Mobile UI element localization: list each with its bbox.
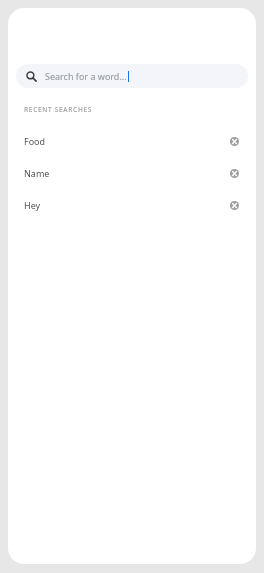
- button[interactable]: Search for a word...: [16, 64, 248, 88]
- button[interactable]: Remove Name from recent searches: [226, 165, 242, 181]
- button[interactable]: Remove Hey from recent searches: [226, 197, 242, 213]
- staticText: Hey: [24, 199, 41, 211]
- button[interactable]: Remove Food from recent searches: [226, 133, 242, 149]
- button[interactable]: Name: [8, 157, 256, 189]
- button[interactable]: Hey: [8, 189, 256, 221]
- button[interactable]: Food: [8, 125, 256, 157]
- staticText: RECENT SEARCHES: [24, 105, 93, 114]
- staticText: Name: [24, 167, 50, 179]
- staticText: Food: [24, 135, 46, 147]
- staticText: Search for a word...: [45, 70, 127, 82]
